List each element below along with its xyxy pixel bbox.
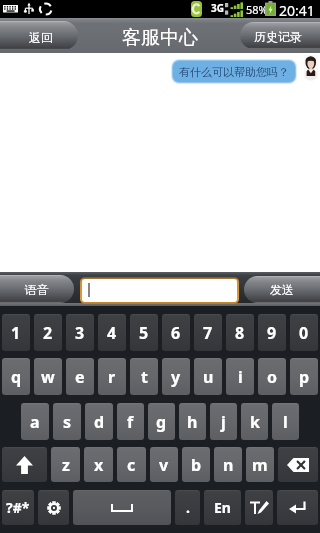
button[interactable]: 1 <box>2 314 30 351</box>
button[interactable]: m <box>246 447 274 482</box>
button[interactable]: v <box>150 447 178 482</box>
button[interactable]: Shift <box>2 447 47 482</box>
staticText: En <box>214 498 231 517</box>
staticText: c <box>127 454 136 476</box>
staticText: z <box>62 454 70 476</box>
staticText: 3 <box>75 322 85 344</box>
button[interactable]: 4 <box>98 314 126 351</box>
button[interactable]: e <box>66 358 94 395</box>
button[interactable]: o <box>258 358 286 395</box>
staticText: 语音 <box>25 282 49 297</box>
staticText: 58% <box>246 2 268 17</box>
staticText: 0 <box>299 322 309 344</box>
staticText: ?#* <box>6 498 30 517</box>
button[interactable]: j <box>210 403 237 440</box>
staticText: m <box>252 454 268 476</box>
button[interactable]: d <box>85 403 113 440</box>
staticText: 8 <box>235 322 245 344</box>
button[interactable]: p <box>290 358 318 395</box>
button[interactable]: Handwriting input <box>245 490 273 525</box>
staticText: y <box>171 366 181 388</box>
button[interactable]: 5 <box>130 314 158 351</box>
staticText: e <box>75 366 85 388</box>
staticText: g <box>156 411 167 433</box>
button[interactable]: y <box>162 358 190 395</box>
staticText: 有什么可以帮助您吗？ <box>179 65 289 79</box>
button[interactable]: . <box>175 490 200 525</box>
button[interactable]: Settings <box>38 490 69 525</box>
staticText: 4 <box>107 322 117 344</box>
staticText: s <box>63 411 72 433</box>
button[interactable]: 2 <box>34 314 62 351</box>
staticText: u <box>203 366 214 388</box>
staticText: 9 <box>267 322 277 344</box>
staticText: 6 <box>171 322 181 344</box>
staticText: t <box>141 366 148 388</box>
button[interactable]: a <box>21 403 49 440</box>
staticText: 返回 <box>29 30 53 45</box>
staticText: a <box>30 411 40 433</box>
staticText: o <box>267 366 278 388</box>
button[interactable]: z <box>51 447 80 482</box>
staticText: 历史记录 <box>254 29 302 44</box>
staticText: p <box>299 366 310 388</box>
button[interactable]: w <box>34 358 62 395</box>
button[interactable] <box>82 279 237 302</box>
button[interactable]: 9 <box>258 314 286 351</box>
staticText: x <box>94 454 104 476</box>
staticText: 5 <box>139 322 149 344</box>
button[interactable]: h <box>179 403 206 440</box>
staticText: d <box>94 411 105 433</box>
staticText: n <box>223 454 234 476</box>
button[interactable]: 7 <box>194 314 222 351</box>
button[interactable]: s <box>53 403 81 440</box>
button[interactable]: g <box>148 403 175 440</box>
staticText: 客服中心 <box>122 26 198 50</box>
button[interactable]: 语音 <box>0 275 74 303</box>
staticText: i <box>238 366 243 388</box>
staticText: w <box>41 366 55 388</box>
button[interactable]: En <box>204 490 241 525</box>
button[interactable]: k <box>241 403 268 440</box>
button[interactable]: Space <box>73 490 171 525</box>
staticText: 2 <box>43 322 53 344</box>
staticText: l <box>283 411 288 433</box>
button[interactable]: t <box>130 358 158 395</box>
button[interactable]: f <box>117 403 144 440</box>
button[interactable]: 发送 <box>244 276 320 303</box>
staticText: r <box>108 366 116 388</box>
button[interactable]: x <box>84 447 113 482</box>
button[interactable]: ?#* <box>2 490 34 525</box>
button[interactable]: l <box>272 403 299 440</box>
button[interactable]: 6 <box>162 314 190 351</box>
button[interactable]: 返回 <box>0 21 78 50</box>
button[interactable]: 0 <box>290 314 318 351</box>
button[interactable]: i <box>226 358 254 395</box>
button[interactable]: u <box>194 358 222 395</box>
staticText: k <box>250 411 260 433</box>
staticText: 1 <box>11 322 21 344</box>
button[interactable]: b <box>182 447 210 482</box>
button[interactable]: n <box>214 447 242 482</box>
staticText: h <box>187 411 198 433</box>
button[interactable]: Backspace <box>278 447 318 482</box>
button[interactable]: Enter <box>277 490 318 525</box>
button[interactable]: q <box>2 358 30 395</box>
button[interactable]: r <box>98 358 126 395</box>
staticText: 20:41 <box>279 1 315 19</box>
button[interactable]: 8 <box>226 314 254 351</box>
staticText: v <box>159 454 169 476</box>
staticText: f <box>127 411 134 433</box>
staticText: 发送 <box>270 282 294 297</box>
button[interactable]: c <box>117 447 146 482</box>
staticText: b <box>191 454 202 476</box>
staticText: j <box>221 411 226 433</box>
button[interactable]: 有什么可以帮助您吗？ <box>173 61 295 82</box>
button[interactable]: 3 <box>66 314 94 351</box>
staticText: q <box>11 366 22 388</box>
staticText: . <box>186 498 190 517</box>
button[interactable]: 历史记录 <box>240 22 320 49</box>
staticText: 7 <box>203 322 213 344</box>
staticText: 3G <box>211 1 224 15</box>
